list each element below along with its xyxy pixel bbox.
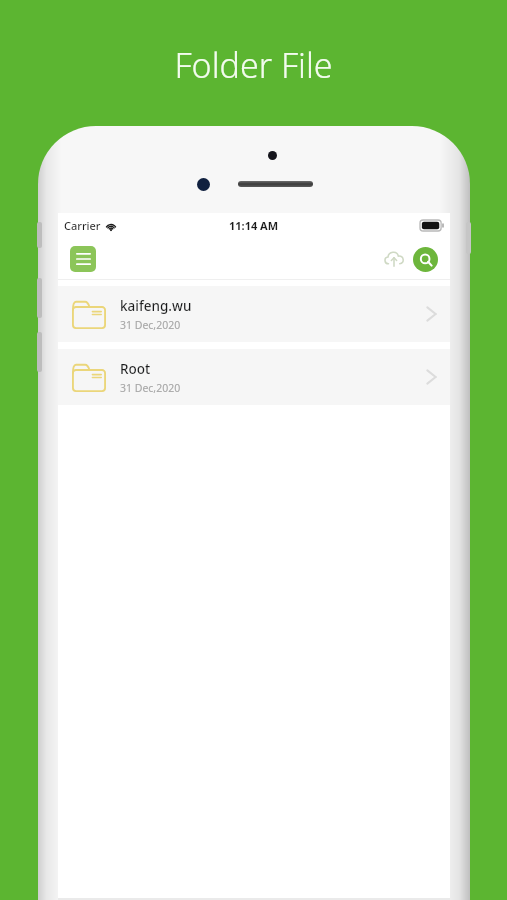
staticText: Carrier (64, 218, 101, 233)
button[interactable]: Search (413, 247, 438, 272)
staticText: kaifeng.wu (120, 297, 192, 315)
button[interactable]: Menu (70, 246, 96, 272)
button[interactable]: Root (58, 349, 450, 405)
staticText: 31 Dec,2020 (120, 318, 181, 332)
button[interactable]: Upload (381, 246, 407, 272)
staticText: Folder File (174, 42, 333, 88)
staticText: Root (120, 360, 151, 378)
button[interactable]: kaifeng.wu (58, 286, 450, 342)
staticText: 31 Dec,2020 (120, 381, 181, 395)
staticText: 11:14 AM (229, 218, 279, 233)
